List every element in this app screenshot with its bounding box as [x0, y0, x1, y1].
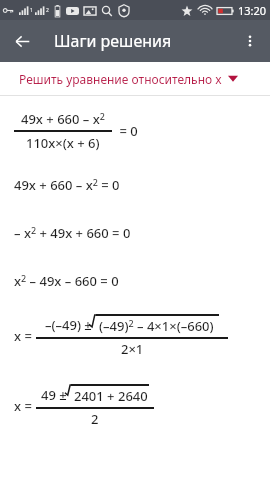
- button[interactable]: Back: [6, 25, 38, 57]
- staticText: 13:20: [238, 3, 267, 18]
- button[interactable]: More options: [234, 25, 266, 57]
- staticText: 2: [46, 7, 49, 14]
- staticText: 1: [30, 7, 33, 14]
- staticText: 49 ±: [41, 386, 71, 404]
- staticText: = 0: [116, 122, 138, 140]
- staticText: 49x + 660 – x2: [21, 110, 105, 128]
- staticText: x =: [14, 397, 36, 415]
- staticText: 2401 + 2640: [74, 387, 148, 405]
- staticText: (–49)2 – 4×1×(–660): [99, 317, 214, 335]
- staticText: x =: [14, 327, 36, 345]
- staticText: – x2 + 49x + 660 = 0: [14, 224, 131, 242]
- staticText: 49x + 660 – x2 = 0: [14, 176, 120, 194]
- staticText: Решить уравнение относительно x: [19, 71, 222, 87]
- button[interactable]: Решить уравнение относительно x: [0, 62, 270, 95]
- staticText: 2: [91, 410, 99, 428]
- staticText: 2×1: [121, 340, 144, 358]
- staticText: x2 – 49x – 660 = 0: [14, 272, 119, 290]
- staticText: 110x×(x + 6): [26, 134, 100, 152]
- staticText: –(–49) ±: [45, 316, 96, 334]
- staticText: Шаги решения: [54, 30, 172, 52]
